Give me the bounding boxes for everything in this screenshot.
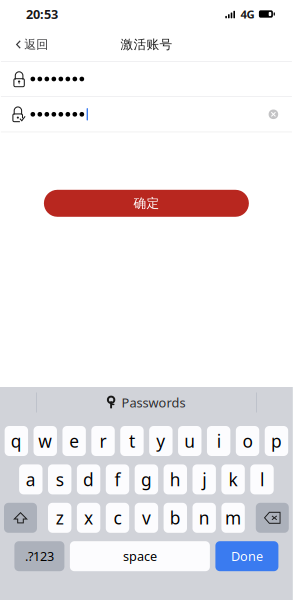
staticText: y [156,429,165,453]
staticText: w [38,429,52,453]
staticText: u [184,429,195,453]
staticText: .?123 [25,548,54,565]
button[interactable]: Passwords [99,389,193,416]
staticText: m [225,506,241,530]
button[interactable]: f [106,464,129,494]
button[interactable]: Delete [256,503,289,533]
button[interactable]: e [62,426,86,456]
button[interactable]: g [135,464,158,494]
staticText: g [141,468,152,491]
button[interactable]: b [164,503,187,533]
staticText: z [56,506,64,530]
staticText: i [217,429,221,453]
button[interactable]: c [106,503,129,533]
button[interactable]: n [192,503,216,533]
button[interactable]: m [221,503,245,533]
button[interactable]: i [207,426,230,456]
button[interactable]: o [236,426,259,456]
button[interactable]: v [135,503,158,533]
staticText: o [243,429,253,453]
button[interactable]: w [34,426,57,456]
staticText: c [113,506,121,530]
button[interactable]: l [250,464,274,494]
staticText: 20:53 [26,5,58,23]
button[interactable]: .?123 [14,541,64,571]
staticText: x [84,506,93,530]
staticText: s [56,468,64,491]
staticText: b [170,506,181,530]
staticText: space [123,548,157,565]
button[interactable]: a [19,464,42,494]
button[interactable]: r [91,426,115,456]
staticText: l [260,468,264,491]
staticText: t [129,429,135,453]
button[interactable]: 返回 [1,30,58,59]
staticText: a [26,468,36,491]
button[interactable]: u [178,426,201,456]
button[interactable]: Done [215,541,278,571]
button[interactable]: p [265,426,288,456]
button[interactable]: x [77,503,100,533]
staticText: Done [231,548,263,565]
staticText: 返回 [24,37,48,52]
button[interactable]: h [164,464,187,494]
staticText: e [69,429,79,453]
button[interactable]: q [5,426,28,456]
button[interactable]: Clear text [260,99,286,129]
button[interactable]: y [149,426,173,456]
staticText: q [11,429,22,453]
button[interactable]: Shift [4,503,37,533]
staticText: n [199,506,210,530]
staticText: h [170,468,181,491]
staticText: p [271,429,282,453]
button[interactable]: k [221,464,245,494]
staticText: Passwords [121,394,185,411]
button[interactable]: space [70,541,210,571]
button[interactable]: s [48,464,71,494]
staticText: f [114,468,120,491]
staticText: 4G [240,6,254,22]
button[interactable]: t [120,426,144,456]
staticText: j [202,468,206,491]
staticText: k [229,468,238,491]
staticText: 激活账号 [120,36,172,52]
button[interactable]: z [48,503,71,533]
staticText: r [99,429,106,453]
staticText: 确定 [133,195,159,211]
button[interactable]: d [77,464,100,494]
staticText: d [83,468,94,491]
button[interactable]: j [192,464,216,494]
button[interactable]: 确定 [44,190,249,217]
staticText: v [142,506,151,530]
